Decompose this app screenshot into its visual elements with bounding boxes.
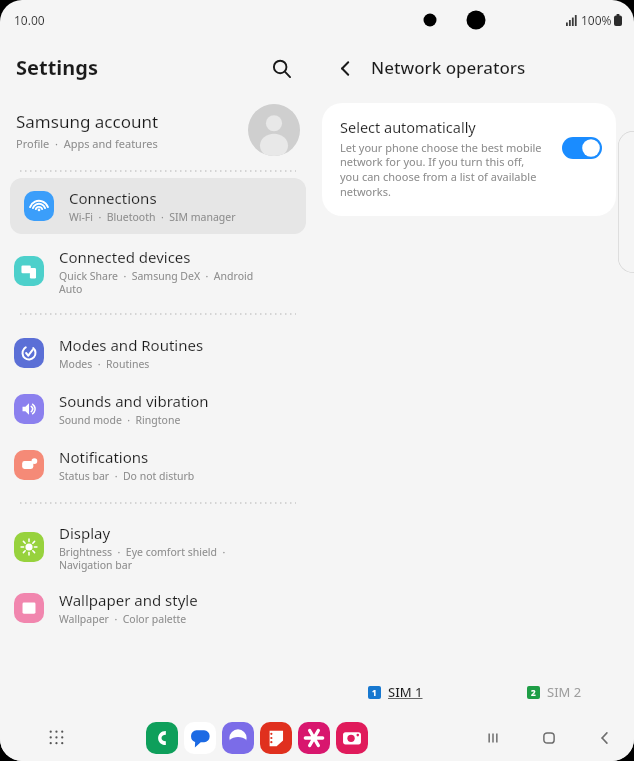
button[interactable]: Gallery <box>298 722 330 754</box>
button[interactable]: Camera <box>336 722 368 754</box>
button[interactable]: Select automatically toggle <box>562 137 602 159</box>
staticText: Display <box>59 523 111 543</box>
staticText: 100% <box>581 12 612 28</box>
button[interactable]: Galaxy Store <box>260 722 292 754</box>
staticText: 1 <box>372 687 377 698</box>
staticText: Profile · Apps and features <box>16 136 158 151</box>
staticText: Wallpaper and style <box>59 590 198 610</box>
button[interactable]: Internet <box>222 722 254 754</box>
staticText: Let your phone choose the best mobile ne… <box>340 140 542 200</box>
staticText: Wi-Fi · Bluetooth · SIM manager <box>69 210 236 224</box>
button[interactable]: 2 <box>475 669 634 715</box>
button[interactable]: Search <box>264 51 298 85</box>
staticText: Brightness · Eye comfort shield · Naviga… <box>59 545 226 572</box>
staticText: Sound mode · Ringtone <box>59 413 181 427</box>
staticText: Connections <box>69 188 157 208</box>
button[interactable]: Home <box>534 723 564 753</box>
button[interactable]: Display <box>0 514 316 580</box>
button[interactable]: Connected devices <box>0 238 316 304</box>
staticText: SIM 2 <box>547 683 582 701</box>
button[interactable]: Sounds and vibration <box>0 381 316 437</box>
button[interactable]: Connections <box>10 178 306 234</box>
button[interactable]: Back <box>328 51 362 85</box>
staticText: Select automatically <box>340 117 476 137</box>
staticText: SIM 1 <box>388 683 423 701</box>
staticText: Wallpaper · Color palette <box>59 612 187 626</box>
button[interactable]: Wallpaper and style <box>0 580 316 636</box>
button[interactable]: Messages <box>184 722 216 754</box>
staticText: Connected devices <box>59 247 191 267</box>
staticText: Modes · Routines <box>59 357 150 371</box>
staticText: Sounds and vibration <box>59 391 209 411</box>
button[interactable]: Recents <box>478 723 508 753</box>
staticText: 10.00 <box>14 12 45 28</box>
button[interactable]: 1 <box>316 669 475 715</box>
button[interactable]: Back <box>590 723 620 753</box>
staticText: Modes and Routines <box>59 335 204 355</box>
staticText: 2 <box>531 687 536 698</box>
button[interactable]: Modes and Routines <box>0 325 316 381</box>
staticText: Quick Share · Samsung DeX · Android Auto <box>59 269 254 296</box>
staticText: Notifications <box>59 447 149 467</box>
button[interactable]: Notifications <box>0 437 316 493</box>
staticText: Status bar · Do not disturb <box>59 469 195 483</box>
staticText: Samsung account <box>16 110 159 133</box>
button[interactable]: Select automatically <box>322 103 616 216</box>
staticText: Network operators <box>371 56 526 79</box>
staticText: Settings <box>16 54 98 81</box>
button[interactable]: Samsung account <box>0 95 316 165</box>
button[interactable]: Apps <box>42 723 72 753</box>
button[interactable]: Phone <box>146 722 178 754</box>
